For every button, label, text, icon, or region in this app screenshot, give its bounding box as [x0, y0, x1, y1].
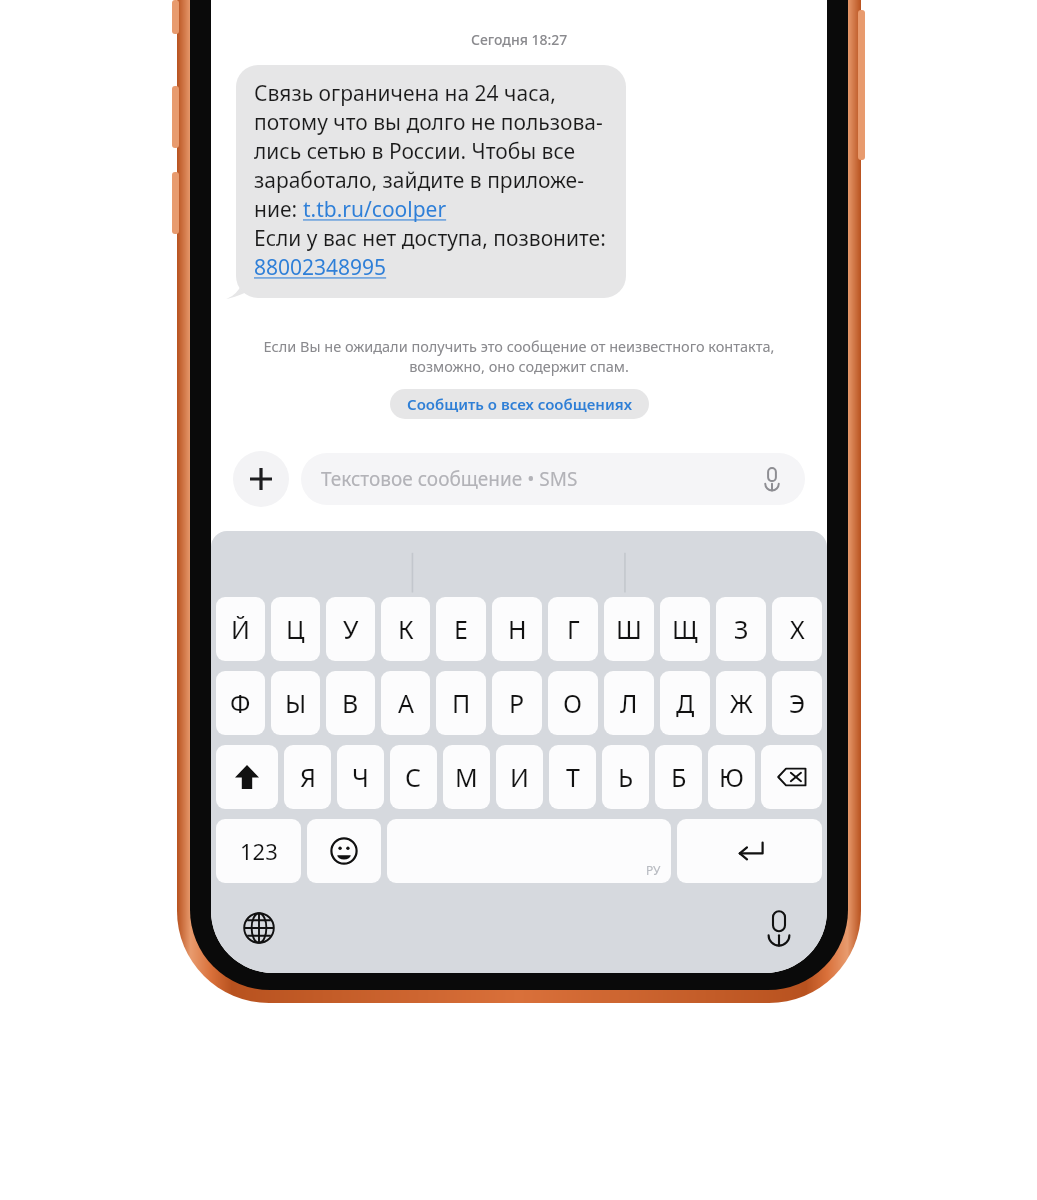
staticText: А — [398, 686, 414, 720]
button[interactable]: О — [548, 671, 598, 735]
button[interactable]: Д — [660, 671, 710, 735]
button[interactable]: Ю — [708, 745, 755, 809]
staticText: РУ — [646, 862, 661, 878]
button[interactable]: Й — [216, 597, 265, 661]
staticText: Если Вы не ожидали получить это сообщени… — [261, 336, 777, 377]
staticText: 123 — [240, 836, 278, 866]
button[interactable]: С — [390, 745, 437, 809]
button[interactable]: 88002348995 — [254, 253, 387, 282]
button[interactable]: Attach — [233, 451, 289, 507]
button[interactable]: И — [496, 745, 543, 809]
button[interactable]: Я — [284, 745, 331, 809]
staticText: лись сетью в России. Чтобы все — [254, 137, 576, 166]
button[interactable]: Ш — [604, 597, 654, 661]
button[interactable]: Текстовое сообщение • SMS — [301, 453, 805, 505]
button[interactable]: Backspace — [761, 745, 822, 809]
staticText: Если у вас нет доступа, позвоните: — [254, 224, 606, 253]
staticText: заработало, зайдите в приложе- — [254, 166, 584, 195]
staticText: У — [343, 612, 359, 646]
button[interactable]: Т — [549, 745, 596, 809]
staticText: М — [455, 760, 478, 794]
staticText: Ш — [616, 612, 642, 646]
staticText: И — [510, 760, 529, 794]
button[interactable]: А — [381, 671, 430, 735]
button[interactable]: Сообщить о всех сообщениях — [390, 389, 649, 419]
staticText: Сообщить о всех сообщениях — [407, 394, 632, 414]
staticText: О — [563, 686, 583, 720]
button[interactable]: Э — [772, 671, 822, 735]
button[interactable]: Return — [677, 819, 822, 883]
button[interactable]: Щ — [660, 597, 710, 661]
staticText: Е — [454, 612, 468, 646]
button[interactable]: Г — [548, 597, 598, 661]
button[interactable]: Ж — [716, 671, 766, 735]
staticText: Ж — [730, 686, 753, 720]
staticText: Ц — [286, 612, 305, 646]
staticText: Текстовое сообщение • SMS — [321, 466, 759, 492]
staticText: Л — [620, 686, 638, 720]
staticText: Н — [508, 612, 527, 646]
button[interactable]: Space — [387, 819, 671, 883]
button[interactable]: У — [326, 597, 375, 661]
staticText: Ф — [230, 686, 251, 720]
button[interactable]: Ь — [602, 745, 649, 809]
staticText: Р — [509, 686, 525, 720]
staticText: Г — [567, 612, 580, 646]
button[interactable]: Л — [604, 671, 654, 735]
button[interactable]: З — [716, 597, 766, 661]
button[interactable]: Х — [772, 597, 822, 661]
button[interactable]: Change keyboard language — [239, 908, 279, 948]
staticText: З — [734, 612, 749, 646]
staticText: ние: — [254, 195, 303, 224]
button[interactable]: Б — [655, 745, 702, 809]
button[interactable]: Е — [436, 597, 486, 661]
button[interactable]: Ф — [216, 671, 265, 735]
button[interactable]: t.tb.ru/coolper — [303, 195, 447, 224]
staticText: Х — [790, 612, 805, 646]
button[interactable]: 123 — [216, 819, 301, 883]
staticText: Ы — [285, 686, 307, 720]
button[interactable]: В — [326, 671, 375, 735]
staticText: Ь — [618, 760, 634, 794]
staticText: Я — [300, 760, 316, 794]
staticText: Ю — [719, 760, 744, 794]
staticText: Й — [231, 612, 250, 646]
button[interactable]: Shift — [216, 745, 278, 809]
button[interactable]: Ц — [271, 597, 320, 661]
staticText: Щ — [672, 612, 698, 646]
staticText: К — [398, 612, 414, 646]
staticText: Сегодня 18:27 — [471, 30, 568, 49]
button[interactable]: Dictate — [759, 908, 799, 948]
button[interactable]: К — [381, 597, 430, 661]
staticText: Д — [676, 686, 695, 720]
button[interactable]: Ч — [337, 745, 384, 809]
staticText: потому что вы долго не пользова- — [254, 108, 603, 137]
button[interactable]: Ы — [271, 671, 320, 735]
staticText: Б — [671, 760, 687, 794]
button[interactable]: Н — [492, 597, 542, 661]
staticText: Ч — [352, 760, 369, 794]
button[interactable]: Emoji — [307, 819, 381, 883]
button[interactable]: Р — [492, 671, 542, 735]
button[interactable]: П — [436, 671, 486, 735]
staticText: С — [405, 760, 422, 794]
staticText: В — [342, 686, 359, 720]
button[interactable]: Voice message — [759, 466, 785, 492]
button[interactable]: Связь ограничена на 24 часа, — [236, 65, 626, 298]
staticText: П — [452, 686, 471, 720]
staticText: Т — [566, 760, 580, 794]
staticText: Э — [789, 686, 806, 720]
staticText: Связь ограничена на 24 часа, — [254, 79, 556, 108]
button[interactable]: М — [443, 745, 490, 809]
